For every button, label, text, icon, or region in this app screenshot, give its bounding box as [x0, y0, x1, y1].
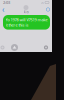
button[interactable]: Details [46, 5, 50, 13]
staticText: LTE [40, 1, 43, 4]
staticText: Yo 1978 will V7519 make it there this is [5, 17, 47, 28]
button[interactable]: Camera [0, 44, 5, 51]
staticText: ‹ [2, 4, 4, 15]
staticText: Alex [23, 10, 28, 14]
button[interactable]: Apps [11, 44, 18, 51]
button[interactable]: Back [2, 5, 6, 13]
button[interactable]: Send [43, 44, 49, 51]
staticText: 2:03 [3, 0, 10, 5]
